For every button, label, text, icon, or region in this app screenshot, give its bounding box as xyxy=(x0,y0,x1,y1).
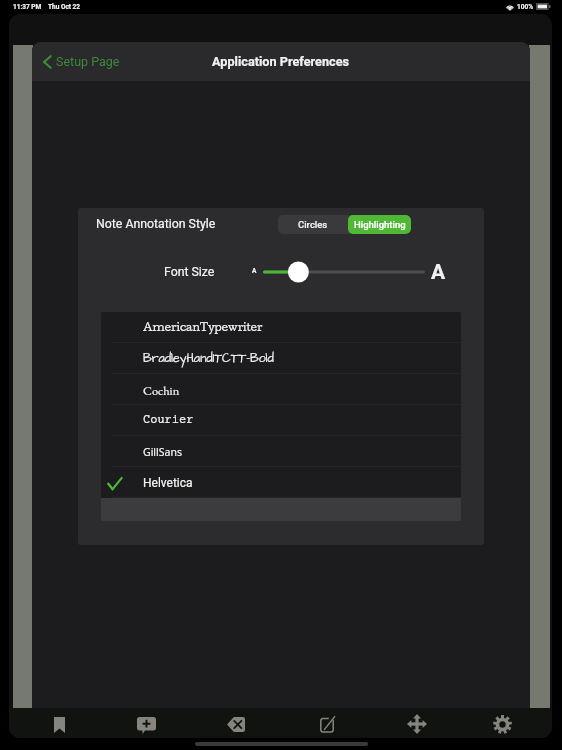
button[interactable]: Bookmark xyxy=(44,708,74,738)
button[interactable]: Settings xyxy=(487,708,517,738)
staticText: Setup Page xyxy=(56,54,120,69)
button[interactable]: Cochin xyxy=(101,374,461,405)
staticText: A xyxy=(431,260,446,285)
button[interactable]: Setup Page xyxy=(32,49,126,74)
staticText: 100% xyxy=(517,3,533,11)
staticText: Circles xyxy=(298,219,328,230)
button[interactable]: Circles xyxy=(278,215,348,234)
button[interactable]: Draw xyxy=(312,708,342,738)
staticText: AmericanTypewriter xyxy=(143,321,263,334)
button[interactable]: Helvetica xyxy=(101,467,461,498)
button[interactable]: BradleyHandITCTT-Bold xyxy=(101,343,461,374)
staticText: Note Annotation Style xyxy=(96,217,216,231)
staticText: Courier xyxy=(143,414,194,427)
staticText: Thu Oct 22 xyxy=(48,3,81,11)
staticText: BradleyHandITCTT-Bold xyxy=(143,350,274,367)
staticText: 11:37 PM xyxy=(13,3,42,11)
staticText: Application Preferences xyxy=(212,54,350,69)
staticText: A xyxy=(252,267,257,275)
button[interactable]: Move xyxy=(402,708,432,738)
staticText: Font Size xyxy=(164,265,215,279)
button[interactable]: Erase xyxy=(221,708,251,738)
button[interactable]: Highlighting xyxy=(348,215,411,234)
button[interactable]: AmericanTypewriter xyxy=(101,312,461,343)
staticText: GillSans xyxy=(143,445,182,459)
button[interactable]: Courier xyxy=(101,405,461,436)
staticText: Highlighting xyxy=(354,219,406,230)
button[interactable]: Add note xyxy=(131,708,161,738)
staticText: Cochin xyxy=(143,382,180,398)
staticText: Helvetica xyxy=(143,476,193,490)
button[interactable]: GillSans xyxy=(101,436,461,467)
